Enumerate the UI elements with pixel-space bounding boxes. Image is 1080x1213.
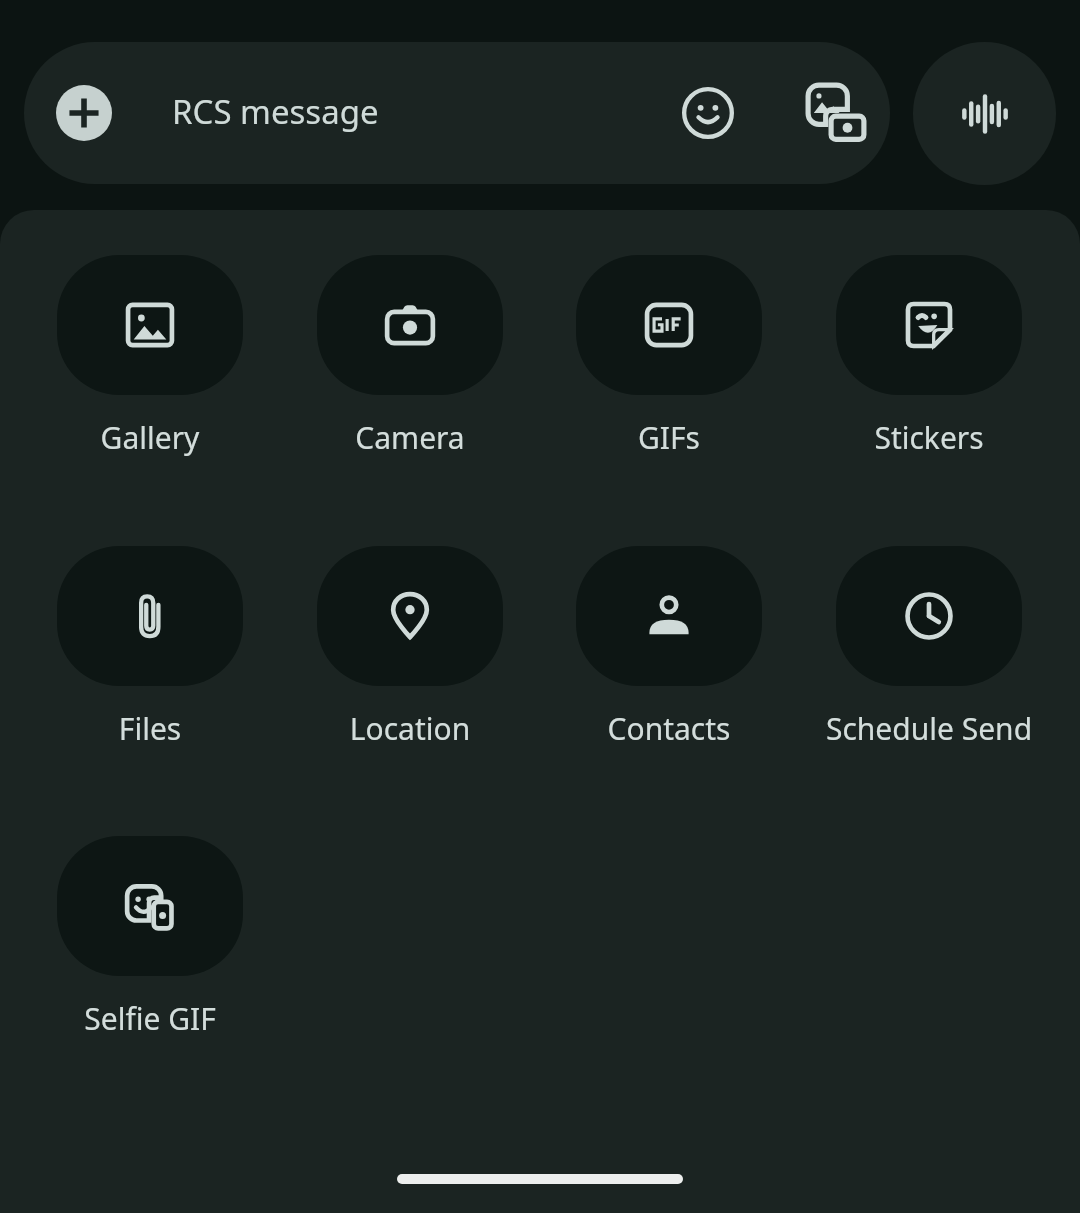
button[interactable]: Location — [296, 546, 524, 749]
button[interactable]: Files — [36, 546, 264, 749]
staticText: Gallery — [36, 417, 264, 458]
button[interactable]: Stickers — [815, 255, 1043, 458]
button[interactable]: GIFs — [555, 255, 783, 458]
button[interactable]: Selfie GIF — [36, 836, 264, 1039]
staticText: Location — [296, 708, 524, 749]
button[interactable]: Camera — [296, 255, 524, 458]
button[interactable]: Contacts — [555, 546, 783, 749]
staticText: Files — [36, 708, 264, 749]
staticText: Stickers — [815, 417, 1043, 458]
staticText: Schedule Send — [815, 708, 1043, 749]
button[interactable]: Record voice message — [913, 42, 1056, 185]
button[interactable]: Add attachment — [56, 85, 112, 141]
staticText: RCS message — [172, 89, 379, 134]
staticText: Contacts — [555, 708, 783, 749]
staticText: GIFs — [555, 417, 783, 458]
button[interactable]: Gallery — [36, 255, 264, 458]
button[interactable]: Schedule Send — [815, 546, 1043, 749]
button[interactable]: Add attachment — [24, 42, 890, 184]
staticText: Camera — [296, 417, 524, 458]
button[interactable]: Attach photo — [792, 69, 880, 157]
staticText: Selfie GIF — [36, 998, 264, 1039]
button[interactable]: Emoji — [664, 69, 752, 157]
